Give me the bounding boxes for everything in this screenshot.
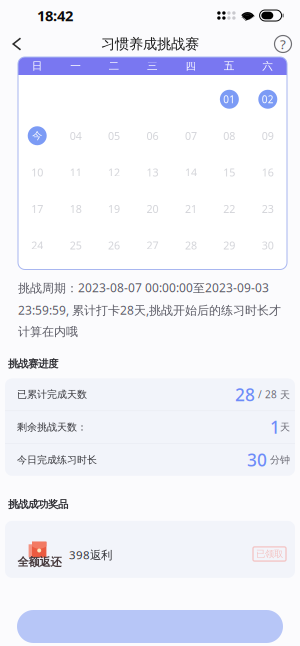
- staticText: 剩余挑战天数：: [17, 421, 87, 433]
- staticText: 一: [70, 59, 81, 73]
- staticText: 已累计完成天数: [17, 388, 87, 401]
- staticText: 15: [223, 165, 235, 179]
- button[interactable]: 返回: [4, 29, 30, 59]
- staticText: 今日完成练习时长: [17, 453, 97, 466]
- staticText: 分钟: [267, 453, 290, 466]
- staticText: 四: [185, 59, 196, 73]
- staticText: 挑战赛进度: [8, 357, 58, 370]
- staticText: 今: [32, 129, 42, 142]
- staticText: 挑战周期：2023-08-07 00:00:00至2023-09-03 23:5…: [18, 279, 281, 339]
- button[interactable]: 帮助: [270, 29, 296, 59]
- staticText: 16: [262, 165, 274, 179]
- staticText: 05: [108, 128, 120, 143]
- staticText: 04: [70, 128, 82, 143]
- staticText: 日: [32, 59, 43, 73]
- staticText: 21: [185, 201, 197, 216]
- staticText: 11: [70, 165, 82, 179]
- staticText: 30: [247, 448, 267, 472]
- staticText: 25: [70, 238, 82, 252]
- staticText: 14: [185, 165, 197, 179]
- staticText: 398返利: [69, 547, 112, 562]
- staticText: 08: [223, 128, 235, 143]
- staticText: 六: [262, 59, 273, 73]
- staticText: 1: [270, 415, 280, 439]
- staticText: 28: [185, 238, 197, 252]
- staticText: 天: [280, 421, 290, 433]
- staticText: 已领取: [256, 548, 283, 560]
- staticText: 18:42: [37, 5, 73, 25]
- staticText: 13: [146, 165, 158, 179]
- staticText: 01: [223, 92, 235, 106]
- staticText: 17: [31, 201, 43, 216]
- staticText: 28: [235, 383, 255, 406]
- staticText: 三: [147, 59, 158, 73]
- staticText: 全额返还: [17, 555, 61, 569]
- staticText: 二: [109, 59, 120, 73]
- staticText: 10: [31, 165, 43, 179]
- staticText: 30: [262, 238, 274, 252]
- staticText: / 28 天: [255, 388, 290, 401]
- staticText: 06: [146, 128, 158, 143]
- staticText: 09: [262, 128, 274, 143]
- staticText: 27: [146, 238, 158, 252]
- staticText: 12: [108, 165, 120, 179]
- staticText: 挑战成功奖品: [8, 498, 68, 511]
- staticText: ?: [280, 35, 286, 53]
- staticText: 23: [262, 201, 274, 216]
- staticText: 19: [108, 201, 120, 216]
- staticText: 24: [31, 238, 43, 252]
- staticText: 20: [146, 201, 158, 216]
- staticText: 26: [108, 238, 120, 252]
- staticText: 五: [224, 59, 235, 73]
- staticText: 02: [262, 92, 274, 106]
- button[interactable]: 立即参与: [17, 610, 283, 643]
- staticText: 18: [70, 201, 82, 216]
- staticText: 07: [185, 128, 197, 143]
- staticText: 22: [223, 201, 235, 216]
- staticText: 29: [223, 238, 235, 252]
- staticText: 习惯养成挑战赛: [101, 35, 199, 53]
